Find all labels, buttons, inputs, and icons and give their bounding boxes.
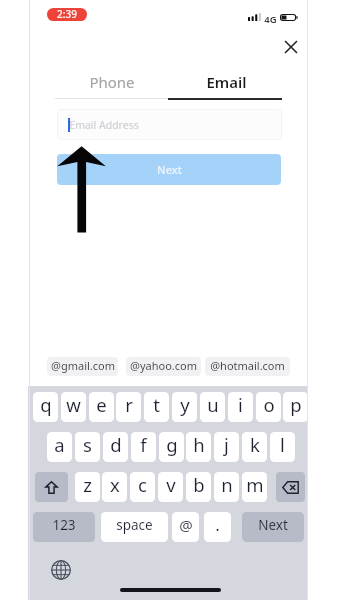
staticText: k	[250, 432, 260, 457]
staticText: m	[246, 472, 264, 497]
staticText: w	[66, 392, 81, 417]
button[interactable]: Email Address	[57, 109, 282, 140]
staticText: g	[166, 432, 178, 457]
button[interactable]: y	[172, 392, 197, 422]
button[interactable]: Close	[279, 35, 303, 59]
staticText: Next	[157, 162, 182, 177]
button[interactable]: a	[47, 432, 72, 462]
button[interactable]: s	[75, 432, 100, 462]
button[interactable]: l	[270, 432, 295, 462]
staticText: 123	[52, 516, 76, 534]
button[interactable]: .	[204, 512, 231, 542]
staticText: p	[290, 392, 302, 417]
button[interactable]: h	[186, 432, 211, 462]
button[interactable]: @yahoo.com	[126, 357, 201, 376]
staticText: Email	[206, 72, 247, 92]
button[interactable]: d	[103, 432, 128, 462]
button[interactable]: @gmail.com	[47, 357, 118, 376]
staticText: .	[215, 513, 220, 536]
staticText: h	[193, 432, 205, 457]
staticText: n	[221, 472, 233, 497]
staticText: y	[180, 392, 190, 417]
staticText: @gmail.com	[51, 358, 115, 373]
staticText: Phone	[89, 72, 135, 92]
button[interactable]: Switch keyboard	[46, 555, 76, 585]
staticText: e	[96, 392, 107, 417]
staticText: s	[83, 432, 92, 457]
staticText: o	[263, 392, 275, 417]
button[interactable]: Next	[242, 512, 304, 542]
staticText: c	[138, 472, 147, 497]
staticText: t	[153, 392, 160, 417]
button[interactable]: i	[228, 392, 253, 422]
staticText: a	[54, 432, 65, 457]
button[interactable]: v	[158, 472, 183, 502]
button[interactable]: z	[75, 472, 100, 502]
button[interactable]: space	[101, 512, 168, 542]
staticText: v	[166, 472, 176, 497]
button[interactable]: 123	[33, 512, 95, 542]
staticText: q	[40, 392, 52, 417]
button[interactable]: x	[102, 472, 127, 502]
button[interactable]: Phone	[55, 70, 168, 98]
button[interactable]: k	[242, 432, 267, 462]
button[interactable]: Shift	[35, 472, 68, 502]
button[interactable]: j	[214, 432, 239, 462]
staticText: 2:39	[57, 8, 77, 20]
staticText: f	[140, 432, 147, 457]
button[interactable]: w	[61, 392, 86, 422]
staticText: Email Address	[69, 118, 139, 132]
staticText: b	[193, 472, 205, 497]
staticText: @hotmail.com	[210, 358, 285, 373]
button[interactable]: f	[131, 432, 156, 462]
staticText: @	[179, 515, 193, 535]
staticText: @yahoo.com	[130, 358, 197, 373]
button[interactable]: Email	[168, 70, 281, 98]
button[interactable]: @	[172, 512, 199, 542]
button[interactable]: b	[186, 472, 211, 502]
staticText: j	[224, 432, 229, 457]
button[interactable]: c	[130, 472, 155, 502]
button[interactable]: e	[89, 392, 114, 422]
staticText: z	[83, 472, 92, 497]
staticText: d	[110, 432, 122, 457]
staticText: l	[280, 432, 285, 457]
button[interactable]: @hotmail.com	[205, 357, 290, 376]
button[interactable]: q	[33, 392, 58, 422]
staticText: u	[207, 392, 219, 417]
button[interactable]: r	[116, 392, 141, 422]
staticText: x	[110, 472, 120, 497]
staticText: i	[238, 392, 243, 417]
button[interactable]: n	[214, 472, 239, 502]
staticText: 4G	[264, 13, 277, 26]
button[interactable]: o	[256, 392, 281, 422]
button[interactable]: g	[159, 432, 184, 462]
staticText: Next	[258, 516, 288, 534]
button[interactable]: u	[200, 392, 225, 422]
button[interactable]: p	[283, 392, 308, 422]
staticText: r	[125, 392, 133, 417]
button[interactable]: t	[144, 392, 169, 422]
button[interactable]: Backspace	[276, 472, 305, 502]
button[interactable]: m	[242, 472, 267, 502]
button[interactable]: Next	[57, 154, 281, 185]
staticText: space	[116, 516, 153, 534]
